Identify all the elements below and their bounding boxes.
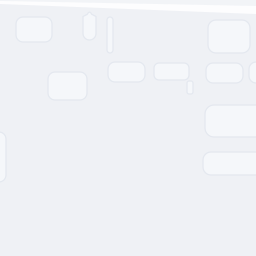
button[interactable]: Placeholder row bbox=[203, 152, 256, 175]
button[interactable]: Placeholder chip bbox=[108, 62, 145, 82]
button[interactable]: Placeholder control bbox=[83, 10, 96, 40]
button[interactable]: Placeholder control bbox=[107, 17, 113, 53]
button[interactable]: Placeholder tile bbox=[48, 72, 87, 100]
button[interactable]: Placeholder card bbox=[0, 132, 6, 182]
button[interactable]: Placeholder control bbox=[187, 81, 193, 94]
button[interactable]: Placeholder button bbox=[16, 17, 52, 42]
button[interactable]: Placeholder chip bbox=[249, 62, 256, 83]
button[interactable]: Placeholder chip bbox=[154, 63, 189, 80]
button[interactable]: Placeholder chip bbox=[206, 63, 243, 83]
button[interactable]: Placeholder card bbox=[205, 105, 256, 137]
button[interactable]: Placeholder tile bbox=[208, 20, 250, 53]
